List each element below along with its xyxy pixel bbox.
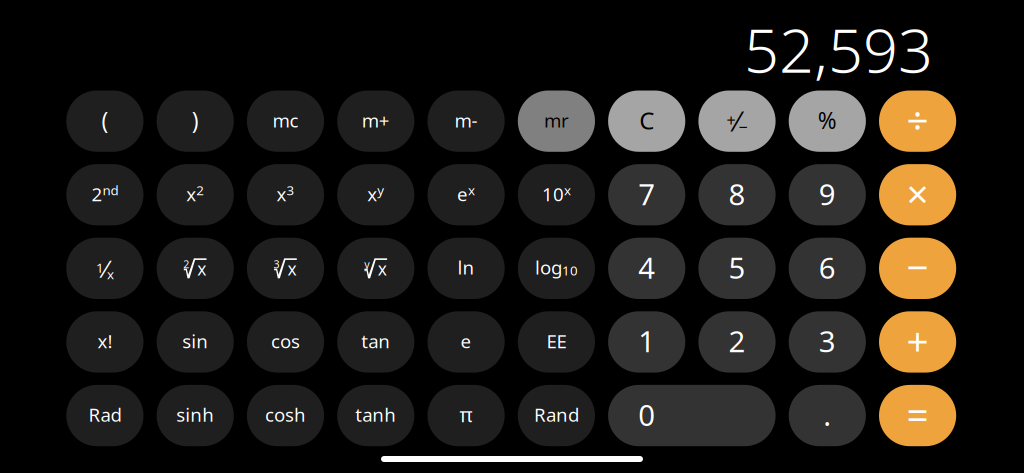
staticText: +⁄− bbox=[726, 103, 747, 139]
button[interactable]: One over x bbox=[66, 238, 143, 299]
staticText: ÷ bbox=[907, 94, 929, 145]
staticText: 5 bbox=[728, 248, 745, 287]
staticText: 8 bbox=[728, 174, 745, 213]
button[interactable]: Hyperbolic cosine bbox=[247, 385, 324, 446]
button[interactable]: e to the power x bbox=[427, 164, 505, 225]
staticText: − bbox=[907, 241, 929, 292]
staticText: m- bbox=[455, 108, 478, 133]
button[interactable]: Exponent bbox=[518, 311, 595, 373]
staticText: x bbox=[287, 257, 296, 280]
staticText: y bbox=[364, 257, 369, 271]
staticText: π bbox=[460, 401, 473, 428]
staticText: 9 bbox=[819, 174, 836, 213]
staticText: 3 bbox=[819, 321, 836, 360]
staticText: tan bbox=[361, 329, 390, 353]
staticText: % bbox=[818, 105, 837, 135]
button[interactable]: x cubed bbox=[247, 164, 324, 225]
button[interactable]: Divide bbox=[879, 90, 956, 152]
staticText: cos bbox=[271, 329, 300, 353]
staticText: 7 bbox=[638, 174, 655, 213]
staticText: cosh bbox=[265, 402, 306, 427]
staticText: 1⁄x bbox=[96, 252, 114, 284]
staticText: 6 bbox=[819, 248, 836, 287]
button[interactable]: Memory clear bbox=[247, 90, 324, 152]
button[interactable]: x to the power y bbox=[337, 164, 414, 225]
button[interactable]: Second function bbox=[66, 164, 143, 225]
button[interactable]: Euler's number bbox=[427, 311, 505, 373]
button[interactable]: Radians bbox=[66, 385, 143, 446]
button[interactable]: Square root of x bbox=[157, 238, 234, 299]
staticText: mc bbox=[272, 108, 298, 133]
staticText: ln bbox=[458, 255, 475, 280]
button[interactable]: Decimal point bbox=[789, 385, 866, 446]
button[interactable]: Subtract bbox=[879, 238, 956, 299]
staticText: 52,593 bbox=[744, 8, 933, 90]
button[interactable]: 9 bbox=[789, 164, 866, 225]
staticText: x! bbox=[97, 329, 112, 353]
staticText: + bbox=[907, 315, 929, 366]
button[interactable]: Sine bbox=[157, 311, 234, 373]
button[interactable]: 3 bbox=[789, 311, 866, 373]
staticText: C bbox=[639, 104, 654, 136]
staticText: . bbox=[823, 395, 831, 434]
button[interactable]: 7 bbox=[608, 164, 685, 225]
button[interactable]: 10 to the power x bbox=[518, 164, 595, 225]
button[interactable]: Factorial bbox=[66, 311, 143, 373]
button[interactable]: Plus minus bbox=[698, 90, 776, 152]
staticText: 10x bbox=[542, 181, 571, 206]
staticText: x2 bbox=[186, 181, 204, 206]
staticText: Rand bbox=[534, 402, 579, 427]
staticText: 1 bbox=[638, 321, 655, 360]
staticText: sinh bbox=[176, 402, 214, 427]
button[interactable]: Log base 10 bbox=[518, 238, 595, 299]
button[interactable]: 1 bbox=[608, 311, 685, 373]
staticText: × bbox=[907, 168, 929, 219]
button[interactable]: Memory add bbox=[337, 90, 414, 152]
button[interactable]: Clear bbox=[608, 90, 685, 152]
button[interactable]: Add bbox=[879, 311, 956, 373]
staticText: 0 bbox=[638, 395, 655, 434]
button[interactable]: Cosine bbox=[247, 311, 324, 373]
staticText: = bbox=[907, 388, 929, 440]
staticText: x3 bbox=[276, 181, 294, 206]
button[interactable]: Tangent bbox=[337, 311, 414, 373]
staticText: x bbox=[197, 257, 206, 280]
staticText: tanh bbox=[355, 402, 396, 427]
staticText: 2nd bbox=[91, 181, 118, 206]
button[interactable]: Close parenthesis bbox=[157, 90, 234, 152]
staticText: 2 bbox=[183, 257, 189, 271]
button[interactable]: 8 bbox=[698, 164, 776, 225]
staticText: ) bbox=[192, 105, 199, 135]
button[interactable]: Random bbox=[518, 385, 595, 446]
button[interactable]: x squared bbox=[157, 164, 234, 225]
button[interactable]: 0 bbox=[608, 385, 776, 446]
button[interactable]: Open parenthesis bbox=[66, 90, 143, 152]
staticText: ex bbox=[457, 181, 475, 206]
staticText: xy bbox=[367, 181, 384, 206]
button[interactable]: 4 bbox=[608, 238, 685, 299]
button[interactable]: Percent bbox=[789, 90, 866, 152]
button[interactable]: y-th root of x bbox=[337, 238, 414, 299]
button[interactable]: Cube root of x bbox=[247, 238, 324, 299]
button[interactable]: Memory recall bbox=[518, 90, 595, 152]
staticText: 4 bbox=[638, 248, 655, 287]
staticText: log10 bbox=[535, 255, 578, 280]
staticText: x bbox=[378, 257, 387, 280]
button[interactable]: Hyperbolic tangent bbox=[337, 385, 414, 446]
staticText: ( bbox=[101, 105, 108, 135]
button[interactable]: Equals bbox=[879, 385, 956, 446]
button[interactable]: Pi bbox=[427, 385, 505, 446]
button[interactable]: 2 bbox=[698, 311, 776, 373]
button[interactable]: 6 bbox=[789, 238, 866, 299]
button[interactable]: Memory subtract bbox=[427, 90, 505, 152]
button[interactable]: Natural logarithm bbox=[427, 238, 505, 299]
staticText: 3 bbox=[273, 257, 279, 271]
staticText: 2 bbox=[728, 321, 745, 360]
button[interactable]: Hyperbolic sine bbox=[157, 385, 234, 446]
button[interactable]: 5 bbox=[698, 238, 776, 299]
button[interactable]: Multiply bbox=[879, 164, 956, 225]
staticText: e bbox=[461, 329, 472, 353]
staticText: sin bbox=[182, 329, 208, 353]
staticText: mr bbox=[544, 108, 569, 133]
staticText: Rad bbox=[88, 402, 121, 427]
